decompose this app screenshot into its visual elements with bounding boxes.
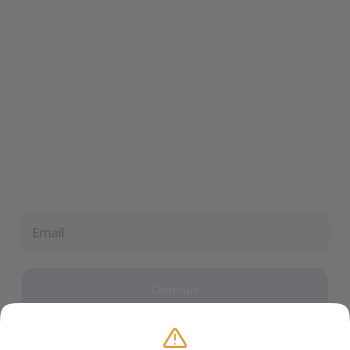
staticText: Email <box>32 223 64 241</box>
staticText: Continue <box>151 283 199 297</box>
button[interactable]: Continue <box>22 268 328 312</box>
